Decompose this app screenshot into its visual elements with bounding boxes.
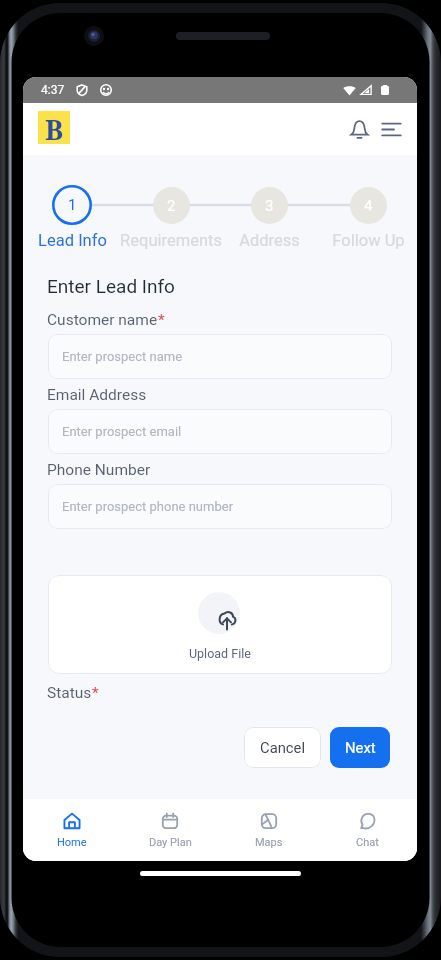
staticText: Requirements xyxy=(120,231,222,250)
staticText: Enter prospect phone number xyxy=(62,499,234,514)
staticText: Phone Number xyxy=(47,461,151,479)
staticText: Enter Lead Info xyxy=(47,275,175,297)
staticText: Follow Up xyxy=(332,231,405,250)
button[interactable]: Next xyxy=(330,727,390,768)
staticText: Enter prospect email xyxy=(62,424,182,439)
staticText: Customer name xyxy=(47,311,158,329)
staticText: 3 xyxy=(265,197,274,215)
staticText: Status xyxy=(47,684,92,702)
button[interactable]: 1 xyxy=(52,185,92,225)
staticText: Home xyxy=(57,836,87,849)
staticText: Email Address xyxy=(47,386,147,404)
staticText: 4:37 xyxy=(41,83,65,97)
button[interactable]: Cancel xyxy=(244,727,321,768)
button[interactable]: 4 xyxy=(348,185,388,225)
button[interactable]: Maps xyxy=(219,799,318,861)
staticText: * xyxy=(92,684,99,702)
button[interactable]: Menu xyxy=(375,113,407,145)
staticText: B xyxy=(45,111,64,144)
staticText: Maps xyxy=(255,836,283,849)
button[interactable]: Enter prospect email xyxy=(48,409,392,454)
staticText: 2 xyxy=(167,197,176,215)
staticText: Enter prospect name xyxy=(62,349,183,364)
staticText: 4 xyxy=(364,197,373,215)
button[interactable]: Notifications xyxy=(343,113,375,145)
button[interactable]: Upload File xyxy=(48,575,392,674)
button[interactable]: Home xyxy=(23,799,121,861)
button[interactable]: 3 xyxy=(249,185,289,225)
staticText: Upload File xyxy=(189,646,251,661)
staticText: Cancel xyxy=(260,739,306,756)
button[interactable]: Chat xyxy=(318,799,417,861)
button[interactable]: 2 xyxy=(151,185,191,225)
staticText: Address xyxy=(239,231,300,250)
button[interactable]: Brand logo xyxy=(38,111,70,144)
staticText: Chat xyxy=(356,836,379,849)
staticText: Next xyxy=(345,739,376,756)
button[interactable]: Day Plan xyxy=(121,799,219,861)
staticText: Day Plan xyxy=(149,836,192,849)
staticText: 1 xyxy=(68,196,77,214)
staticText: * xyxy=(158,311,165,329)
button[interactable]: Enter prospect name xyxy=(48,334,392,379)
staticText: Lead Info xyxy=(38,231,107,250)
button[interactable]: Enter prospect phone number xyxy=(48,484,392,529)
